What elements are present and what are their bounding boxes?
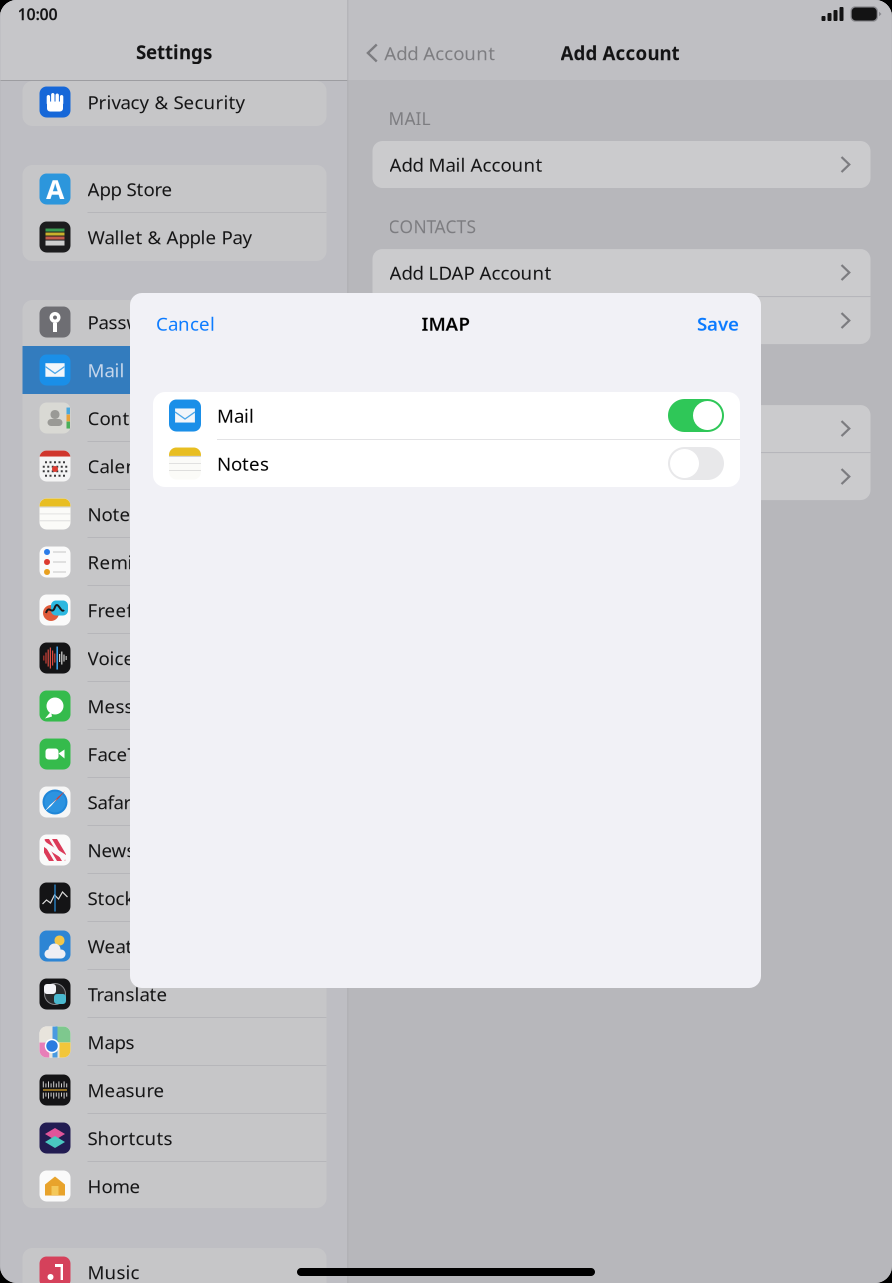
button[interactable]: Home: [22, 1162, 326, 1210]
button[interactable]: FaceTime: [22, 730, 326, 778]
staticText: CONTACTS: [388, 215, 476, 238]
button[interactable]: Reminders: [22, 538, 326, 586]
staticText: Shortcuts: [87, 1126, 172, 1150]
staticText: Add Account: [560, 41, 679, 65]
button[interactable]: Calendar: [22, 442, 326, 490]
button[interactable]: Privacy & Security: [22, 78, 326, 126]
button[interactable]: Shortcuts: [22, 1114, 326, 1162]
button[interactable]: Weather: [22, 922, 326, 970]
staticText: Add Account: [384, 41, 495, 65]
staticText: Safari: [87, 790, 136, 814]
staticText: Translate: [87, 982, 167, 1006]
staticText: Privacy & Security: [87, 90, 245, 114]
staticText: Mail: [217, 403, 254, 428]
staticText: Add Mail Account: [389, 152, 542, 177]
button[interactable]: Add Subscribed Calendar: [372, 453, 870, 500]
button[interactable]: Wallet & Apple Pay: [22, 213, 326, 261]
button[interactable]: Maps: [22, 1018, 326, 1066]
staticText: Mail: [87, 358, 124, 382]
staticText: Passwords: [87, 310, 179, 334]
button[interactable]: Mail: [22, 346, 326, 394]
button[interactable]: Contacts: [22, 394, 326, 442]
staticText: Calendar: [87, 454, 166, 478]
staticText: Save: [697, 311, 739, 336]
button[interactable]: Passwords: [22, 298, 326, 346]
button[interactable]: A: [22, 165, 326, 213]
button[interactable]: Translate: [22, 970, 326, 1018]
staticText: Freeform: [87, 598, 168, 622]
staticText: A: [46, 171, 64, 207]
button[interactable]: Freeform: [22, 586, 326, 634]
staticText: MAIL: [388, 107, 430, 130]
staticText: IMAP: [421, 311, 469, 336]
staticText: Music: [87, 1260, 139, 1283]
staticText: Notes: [87, 502, 139, 526]
button[interactable]: News: [22, 826, 326, 874]
button[interactable]: Add CalDAV Account: [372, 405, 870, 452]
button[interactable]: Stocks: [22, 874, 326, 922]
staticText: Add Subscribed Calendar: [389, 464, 609, 489]
staticText: Reminders: [87, 550, 183, 574]
staticText: Cancel: [156, 311, 215, 336]
button[interactable]: Add LDAP Account: [372, 249, 870, 296]
staticText: CALENDARS: [388, 371, 486, 394]
button[interactable]: Add CardDAV Account: [372, 297, 870, 344]
staticText: Weather: [87, 934, 163, 958]
staticText: Settings: [136, 40, 212, 64]
staticText: Add CalDAV Account: [389, 416, 567, 441]
staticText: Notes: [217, 451, 269, 476]
staticText: Maps: [87, 1030, 134, 1054]
staticText: Measure: [87, 1078, 164, 1102]
staticText: App Store: [87, 177, 172, 201]
staticText: Stocks: [87, 886, 143, 910]
staticText: 10:00: [17, 3, 57, 25]
button[interactable]: Music: [22, 1248, 326, 1283]
staticText: Wallet & Apple Pay: [87, 225, 252, 249]
staticText: Add LDAP Account: [389, 260, 551, 285]
staticText: News: [87, 838, 135, 862]
button[interactable]: Add Account: [365, 41, 495, 65]
button[interactable]: Cancel: [156, 311, 215, 336]
staticText: Contacts: [87, 406, 164, 430]
button[interactable]: Save: [697, 311, 739, 336]
button[interactable]: Add Mail Account: [372, 141, 870, 188]
staticText: Messages: [87, 694, 174, 718]
button[interactable]: Safari: [22, 778, 326, 826]
staticText: Home: [87, 1174, 140, 1198]
staticText: Add CardDAV Account: [389, 308, 580, 333]
button[interactable]: Voice Memos: [22, 634, 326, 682]
button[interactable]: Messages: [22, 682, 326, 730]
button[interactable]: Notes: [22, 490, 326, 538]
staticText: Voice Memos: [87, 646, 204, 670]
button[interactable]: Measure: [22, 1066, 326, 1114]
staticText: FaceTime: [87, 742, 170, 766]
